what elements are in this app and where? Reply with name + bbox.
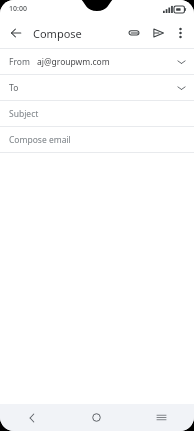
button[interactable]: Compose email body xyxy=(0,127,194,152)
button[interactable]: Back xyxy=(0,404,64,431)
button[interactable]: Recent apps xyxy=(129,404,194,431)
staticText: 10:00 xyxy=(9,4,27,14)
button[interactable]: Subject field xyxy=(0,101,194,126)
staticText: Compose xyxy=(33,26,82,41)
button[interactable]: More options xyxy=(170,23,190,43)
button[interactable]: From field xyxy=(0,49,194,74)
button[interactable]: Back xyxy=(5,22,27,44)
staticText: aj@groupwm.com xyxy=(37,56,110,68)
staticText: To xyxy=(9,82,19,94)
staticText: From xyxy=(9,56,30,68)
button[interactable]: Send xyxy=(147,22,169,44)
button[interactable]: Home xyxy=(64,404,129,431)
staticText: Compose email xyxy=(9,134,71,146)
button[interactable]: To field xyxy=(0,75,194,100)
staticText: Subject xyxy=(9,108,39,120)
button[interactable]: Attach file xyxy=(123,22,145,44)
